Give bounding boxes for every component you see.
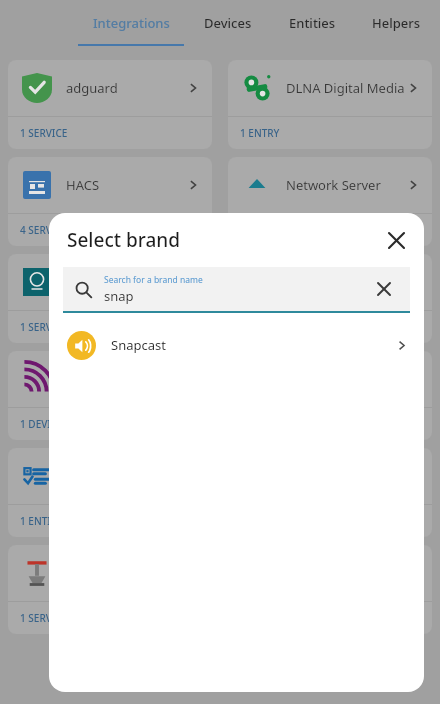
button[interactable]: Devices — [186, 0, 270, 46]
staticText: Devices — [204, 14, 252, 32]
staticText: 1 DEVICE — [20, 417, 63, 431]
staticText: Sonos — [66, 273, 186, 291]
button[interactable]: Extra 4 — [228, 545, 432, 634]
staticText: Select brand — [67, 227, 378, 253]
button[interactable]: Snapcast — [49, 321, 424, 369]
button[interactable]: Clear search — [370, 275, 398, 303]
button[interactable]: Close — [378, 222, 414, 258]
button[interactable]: Extra — [228, 254, 432, 343]
staticText: Network Server — [286, 176, 406, 194]
button[interactable]: Helpers — [354, 0, 438, 46]
button[interactable]: Network Server — [228, 157, 432, 246]
staticText: Snapcast — [111, 336, 395, 354]
button[interactable]: Extra 3 — [228, 448, 432, 537]
staticText: 1 SERVICE — [20, 126, 68, 140]
staticText: Integrations — [93, 14, 170, 32]
staticText: Helpers — [372, 14, 421, 32]
button[interactable]: Sonos — [8, 254, 212, 343]
staticText: 1 ENTRY — [240, 126, 280, 140]
button[interactable]: Shelly — [8, 351, 212, 440]
staticText: 1 SERVICE — [20, 320, 68, 334]
staticText: Entities — [289, 14, 336, 32]
staticText: Extra — [286, 273, 406, 291]
button[interactable]: Extra 2 — [228, 351, 432, 440]
staticText: snap — [104, 287, 134, 305]
button[interactable]: DLNA Digital Media Server — [228, 60, 432, 149]
button[interactable]: HACS — [8, 157, 212, 246]
button[interactable]: Integrations — [76, 0, 186, 46]
staticText: adguard — [66, 79, 186, 97]
button[interactable]: Entities — [270, 0, 354, 46]
staticText: 1 ENTITY — [20, 514, 63, 528]
staticText: 1 SERVICE — [20, 611, 68, 625]
button[interactable]: adguard — [8, 60, 212, 149]
staticText: DLNA Digital Media Server — [286, 79, 406, 97]
staticText: HACS — [66, 176, 186, 194]
staticText: Search for a brand name — [104, 274, 203, 286]
button[interactable]: Plunger — [8, 545, 212, 634]
button[interactable]: Todo — [8, 448, 212, 537]
staticText: 4 SERVICES — [20, 223, 73, 237]
button[interactable]: Search for a brand name — [63, 267, 410, 311]
